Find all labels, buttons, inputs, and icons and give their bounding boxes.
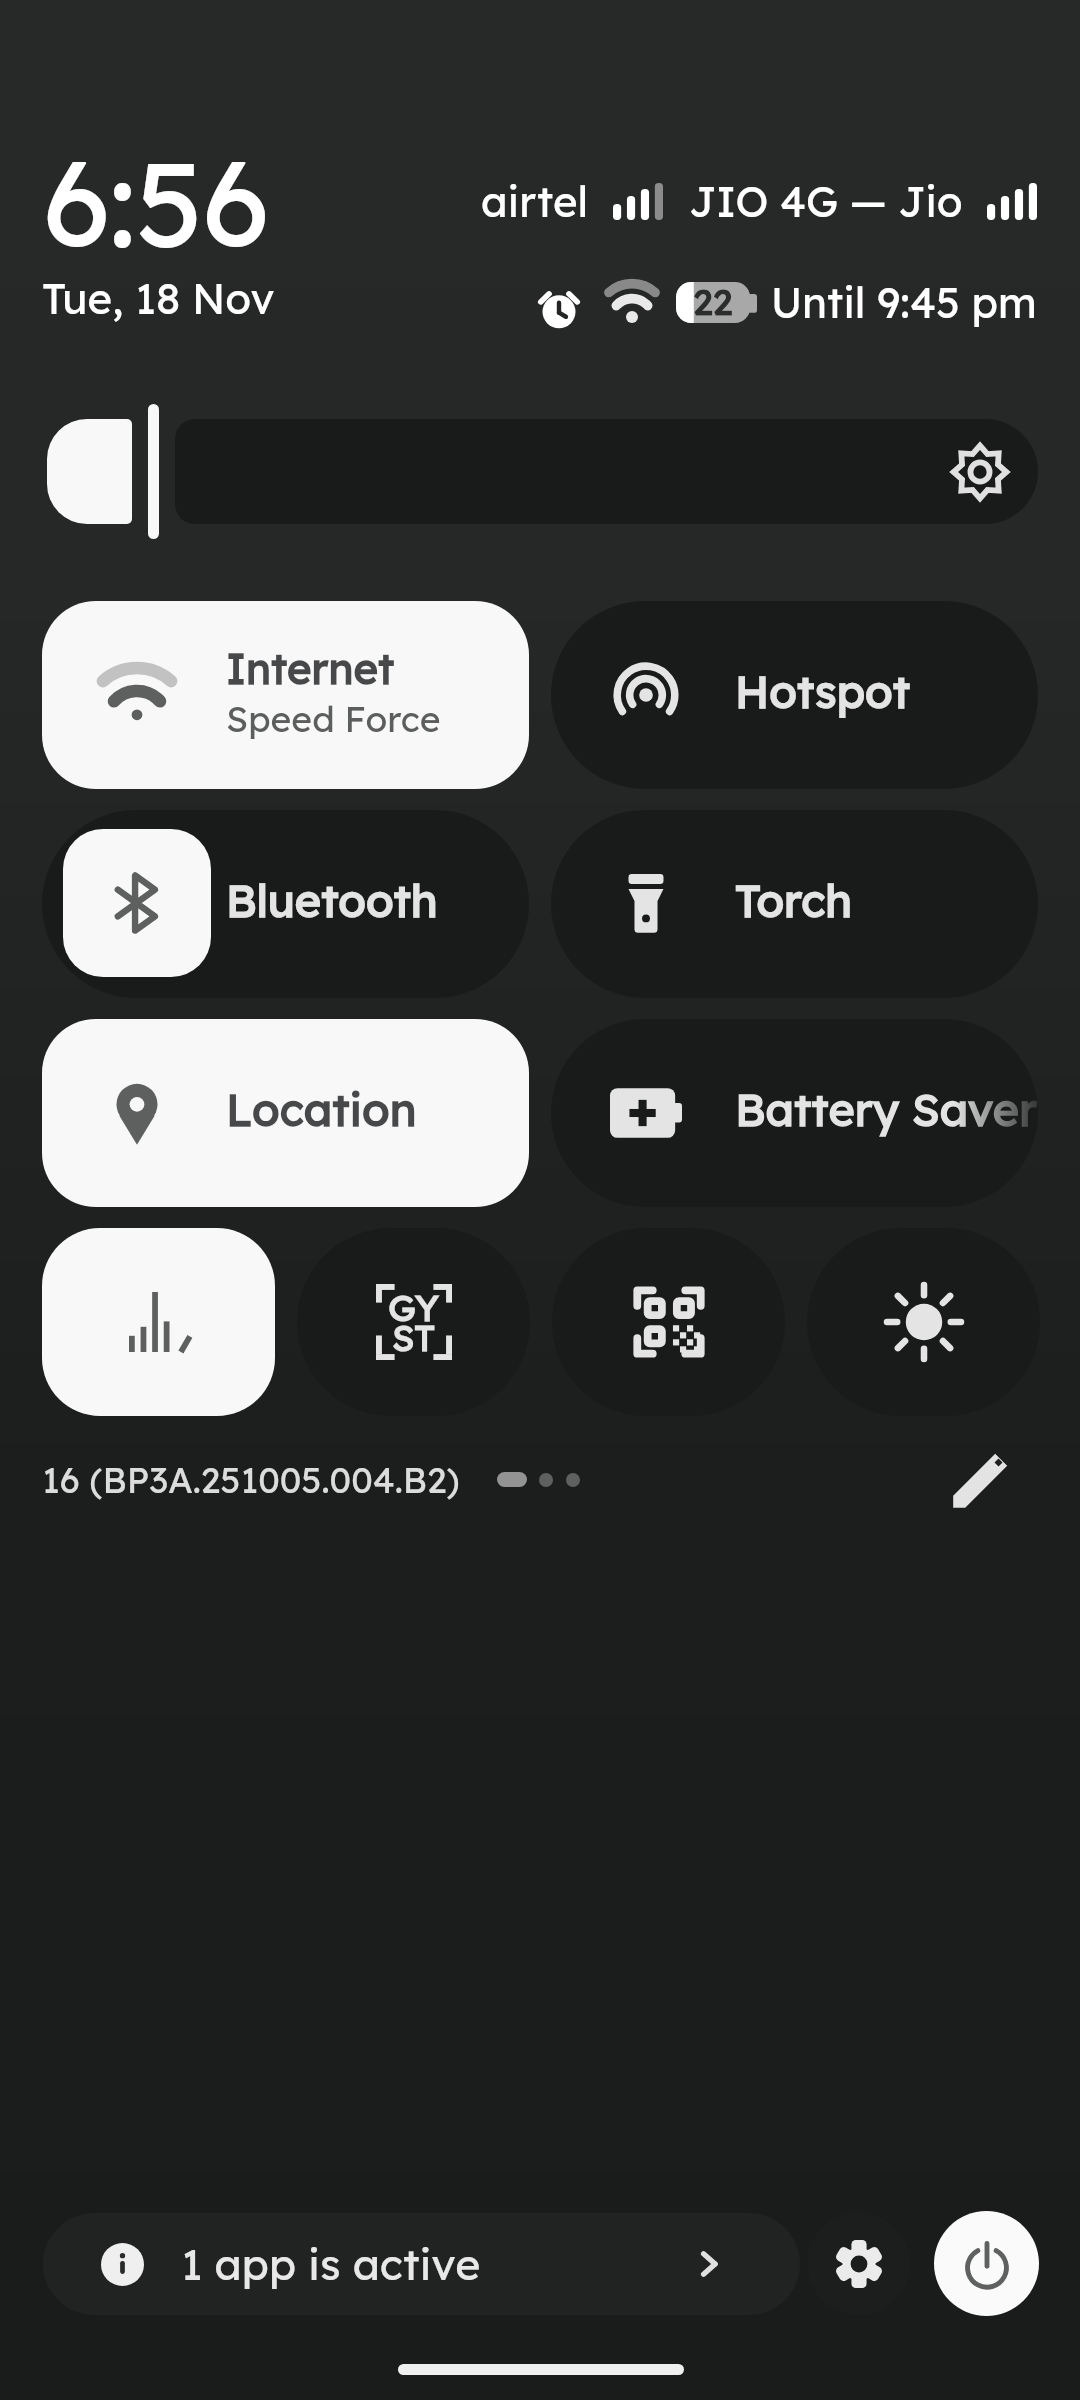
button[interactable]: Scan QR code — [552, 1228, 785, 1416]
button[interactable]: Scan GST — [297, 1228, 530, 1416]
button[interactable]: Brightness — [47, 419, 132, 524]
button[interactable] — [175, 419, 1038, 524]
button[interactable]: Battery Saver — [551, 1019, 1038, 1207]
button[interactable]: Torch — [551, 810, 1038, 998]
button[interactable]: 1 app is active — [43, 2213, 800, 2315]
staticText: 16 (BP3A.251005.004.B2) — [42, 1457, 460, 1501]
button[interactable]: Edit tiles — [936, 1433, 1028, 1525]
staticText: Battery Saver — [735, 1081, 1038, 1137]
staticText: Tue, 18 Nov — [42, 272, 275, 325]
button[interactable]: Data usage — [42, 1228, 275, 1416]
staticText: JIO 4G — Jio — [689, 175, 963, 228]
staticText: 1 app is active — [181, 2237, 481, 2291]
staticText: Location — [226, 1081, 417, 1137]
staticText: 22 — [693, 279, 733, 324]
staticText: Speed Force — [226, 696, 441, 740]
button[interactable]: Power — [934, 2211, 1039, 2316]
staticText: GY ST — [388, 1285, 439, 1360]
staticText: Hotspot — [735, 663, 911, 719]
staticText: Until 9:45 pm — [771, 276, 1037, 329]
button[interactable]: Hotspot — [551, 601, 1038, 789]
button[interactable]: Internet — [42, 601, 529, 789]
staticText: Internet — [226, 642, 395, 695]
button[interactable]: Brightness — [807, 1228, 1040, 1416]
button[interactable]: Location — [42, 1019, 529, 1207]
staticText: airtel — [481, 175, 589, 228]
button[interactable]: Bluetooth — [42, 810, 529, 998]
staticText: Bluetooth — [226, 872, 438, 928]
staticText: 6:56 — [43, 127, 269, 277]
button[interactable]: Settings — [807, 2212, 910, 2315]
staticText: Torch — [735, 872, 853, 928]
